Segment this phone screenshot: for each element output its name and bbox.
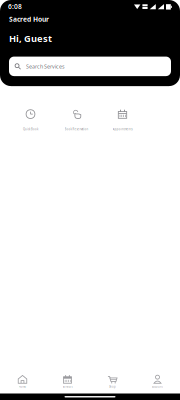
staticText: Account bbox=[152, 385, 163, 388]
button[interactable]: Book Reservation bbox=[53, 109, 99, 131]
staticText: Appointments bbox=[112, 128, 132, 131]
staticText: Search Services bbox=[26, 63, 65, 70]
staticText: Hi, Guest bbox=[9, 32, 52, 45]
button[interactable]: Account bbox=[135, 374, 180, 388]
staticText: Shop bbox=[109, 385, 116, 388]
staticText: Home bbox=[18, 385, 26, 388]
button[interactable]: Home bbox=[0, 374, 45, 388]
button[interactable]: Services bbox=[45, 374, 90, 388]
staticText: Book Reservation bbox=[64, 128, 88, 131]
button[interactable]: Quick Book bbox=[7, 109, 53, 131]
staticText: Services bbox=[62, 385, 72, 388]
staticText: Quick Book bbox=[23, 128, 38, 131]
button[interactable]: Appointments bbox=[99, 109, 145, 131]
button[interactable]: Shop bbox=[90, 374, 135, 388]
staticText: 6:08 bbox=[8, 2, 22, 11]
staticText: Sacred Hour bbox=[9, 15, 49, 24]
button[interactable]: Search Services bbox=[9, 57, 171, 76]
